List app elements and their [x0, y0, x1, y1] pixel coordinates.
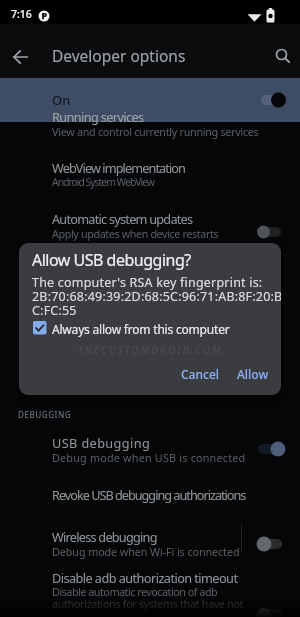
staticText: Wireless debugging — [52, 528, 157, 545]
button[interactable]: USB debugging — [0, 432, 300, 470]
button[interactable] — [268, 42, 298, 72]
staticText: Disable automatic revocation of adb — [52, 584, 218, 599]
staticText: Always allow from this computer — [52, 321, 230, 337]
button[interactable]: Always allow from this computer — [27, 315, 247, 339]
staticText: Android System WebView — [52, 175, 155, 189]
staticText: THECUSTOMDROID.COM — [19, 343, 281, 357]
staticText: Running services — [52, 108, 144, 125]
staticText: Automatic system updates — [52, 210, 193, 227]
button[interactable]: Running services — [0, 104, 300, 148]
staticText: Debug mode when USB is connected — [52, 450, 246, 465]
staticText: View and control currently running servi… — [52, 124, 259, 139]
staticText: Apply updates when device restarts — [52, 226, 219, 241]
button[interactable]: On — [0, 78, 300, 122]
staticText: 7:16 — [11, 7, 32, 21]
button[interactable]: Revoke USB debugging authorizations — [0, 478, 300, 514]
button[interactable]: Cancel — [166, 359, 234, 389]
button[interactable]: Allow — [223, 359, 281, 389]
staticText: Allow USB debugging? — [32, 249, 191, 271]
staticText: Cancel — [181, 366, 220, 382]
button[interactable]: WebView implementation — [0, 155, 300, 199]
staticText: USB debugging — [52, 434, 151, 451]
staticText: Revoke USB debugging authorizations — [52, 486, 246, 503]
button[interactable]: Wireless debugging — [0, 526, 300, 564]
staticText: The computer's RSA key fingerprint is: 2… — [32, 274, 281, 319]
button[interactable] — [6, 43, 34, 71]
staticText: authorizations for systems that have not — [52, 596, 244, 611]
button[interactable] — [250, 532, 286, 556]
staticText: Developer options — [52, 45, 186, 66]
staticText: Debug mode when Wi-Fi is connected — [52, 544, 240, 559]
staticText: WebView implementation — [52, 159, 186, 176]
button[interactable]: Automatic system updates — [0, 206, 300, 246]
staticText: Allow — [237, 366, 269, 382]
staticText: Disable adb authorization timeout — [52, 569, 238, 586]
staticText: On — [52, 91, 71, 109]
staticText: DEBUGGING — [18, 409, 72, 420]
button[interactable]: Disable adb authorization timeout — [0, 567, 300, 617]
